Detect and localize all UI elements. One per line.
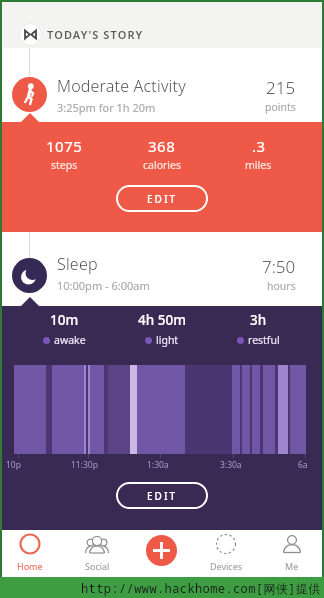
- staticText: Home: [17, 560, 43, 572]
- button[interactable]: Home: [6, 534, 54, 572]
- staticText: points: [265, 100, 296, 114]
- staticText: awake: [54, 333, 86, 347]
- staticText: .3: [252, 136, 266, 156]
- button[interactable]: EDIT: [116, 185, 208, 212]
- button[interactable]: Moderate Activity: [0, 48, 324, 122]
- staticText: 3h: [250, 311, 267, 329]
- staticText: 4h 50m: [138, 311, 186, 329]
- staticText: 1:30a: [147, 459, 169, 471]
- staticText: steps: [51, 158, 78, 172]
- staticText: http://www.hackhome.com[网侠]提供: [81, 580, 321, 596]
- button[interactable]: Sleep: [0, 232, 324, 306]
- staticText: EDIT: [147, 192, 178, 206]
- staticText: 10:00pm - 6:00am: [57, 278, 150, 293]
- button[interactable]: Me: [268, 534, 316, 572]
- staticText: 368: [148, 136, 176, 156]
- staticText: light: [156, 333, 179, 347]
- staticText: Me: [285, 560, 299, 572]
- staticText: calories: [143, 158, 181, 172]
- staticText: miles: [245, 158, 272, 172]
- staticText: 11:30p: [71, 459, 98, 471]
- staticText: 7:50: [262, 255, 296, 278]
- button[interactable]: [146, 535, 177, 566]
- staticText: 3:25pm for 1h 20m: [57, 100, 156, 115]
- staticText: 1075: [46, 136, 83, 156]
- staticText: Devices: [210, 560, 243, 572]
- button[interactable]: Social: [73, 534, 121, 572]
- staticText: EDIT: [147, 489, 178, 503]
- staticText: Moderate Activity: [57, 75, 186, 97]
- button[interactable]: EDIT: [116, 482, 208, 509]
- staticText: restful: [248, 333, 280, 347]
- staticText: 10m: [50, 311, 79, 329]
- staticText: 6a: [298, 459, 308, 471]
- staticText: 215: [266, 76, 296, 99]
- staticText: Social: [85, 560, 110, 572]
- staticText: Sleep: [57, 253, 98, 275]
- button[interactable]: Devices: [202, 534, 250, 572]
- staticText: 3:30a: [220, 459, 242, 471]
- staticText: hours: [267, 279, 296, 293]
- staticText: 10p: [6, 459, 21, 471]
- staticText: TODAY'S STORY: [47, 27, 144, 42]
